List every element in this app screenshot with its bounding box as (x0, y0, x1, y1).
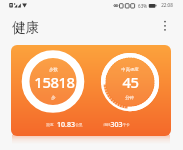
staticText: 15818 (34, 72, 75, 92)
staticText: 22:08 (161, 2, 173, 8)
staticText: 63% (138, 3, 147, 9)
staticText: 45 (122, 72, 139, 92)
staticText: 步数 (49, 67, 58, 72)
staticText: 10.83 (57, 120, 75, 130)
staticText: 303 (110, 120, 123, 130)
staticText: 中高强度 (121, 67, 139, 72)
button[interactable]: More options (157, 18, 173, 36)
staticText: 健康 (12, 19, 40, 36)
staticText: 千卡 (122, 123, 130, 128)
staticText: 步 (51, 95, 56, 100)
staticText: 消耗 (103, 123, 111, 128)
button[interactable]: 健康 (12, 18, 52, 36)
staticText: 公里 (75, 123, 83, 128)
button[interactable] (11, 45, 171, 136)
staticText: 距离 (46, 123, 54, 128)
staticText: 分钟 (125, 95, 134, 100)
